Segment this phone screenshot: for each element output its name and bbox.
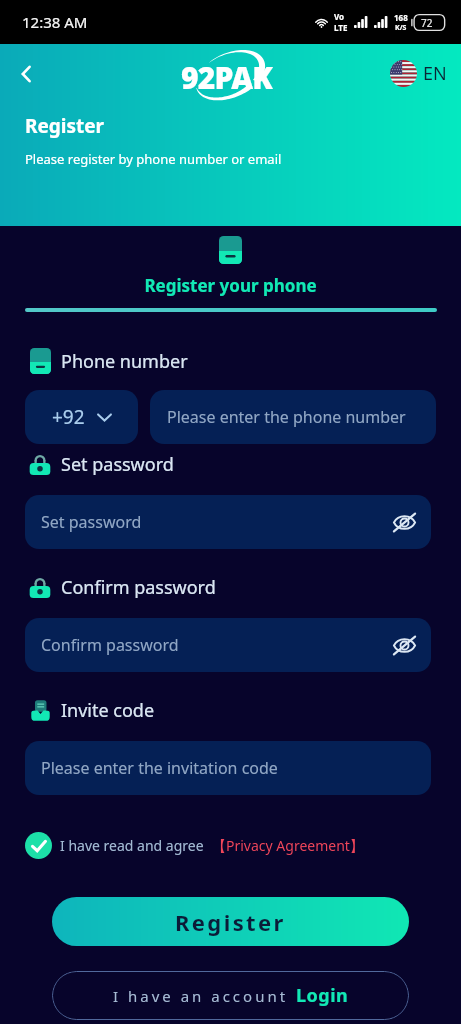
staticText: LTE	[334, 22, 348, 33]
button[interactable]: I have read and agree	[25, 832, 364, 859]
staticText: 168	[394, 12, 408, 23]
button[interactable]: Confirm password	[25, 618, 431, 672]
staticText: Set password	[61, 452, 174, 477]
staticText: Vo	[334, 11, 345, 22]
staticText: EN	[423, 61, 447, 86]
button[interactable]: Register	[52, 897, 409, 946]
staticText: I have read and agree	[60, 836, 204, 855]
button[interactable]: Show password	[389, 630, 419, 660]
staticText: 72	[421, 16, 433, 30]
staticText: Register	[25, 113, 105, 139]
button[interactable]: Set password	[25, 495, 431, 549]
staticText: Please register by phone number or email	[25, 150, 282, 168]
staticText: +92	[52, 404, 85, 430]
staticText: Please enter the invitation code	[41, 757, 278, 779]
button[interactable]: Please enter the phone number	[150, 390, 436, 444]
staticText: 92PAK	[181, 57, 273, 98]
button[interactable]: Please enter the invitation code	[25, 741, 431, 795]
staticText: 12:38 AM	[22, 12, 88, 32]
button[interactable]: EN	[390, 60, 447, 87]
staticText: Login	[296, 983, 349, 1008]
staticText: Set password	[41, 511, 142, 533]
staticText: Please enter the phone number	[167, 406, 406, 428]
staticText: Confirm password	[41, 634, 179, 656]
staticText: Confirm password	[61, 575, 216, 600]
staticText: Invite code	[61, 698, 155, 723]
button[interactable]: Show password	[389, 507, 419, 537]
staticText: 【Privacy Agreement】	[212, 836, 364, 855]
button[interactable]: +92	[25, 390, 138, 444]
staticText: Register your phone	[0, 274, 461, 297]
staticText: Register	[175, 907, 286, 937]
staticText: K/S	[395, 23, 407, 33]
button[interactable]: I have an account	[52, 971, 409, 1020]
staticText: I have an account	[113, 986, 289, 1006]
staticText: Phone number	[61, 349, 188, 374]
button[interactable]: Back	[9, 57, 43, 91]
